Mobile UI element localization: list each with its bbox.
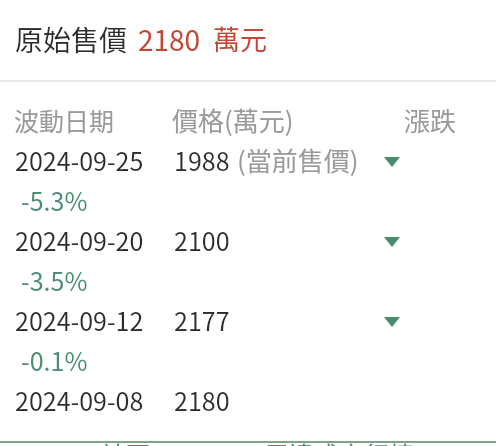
staticText: 2024-09-25 (15, 142, 144, 178)
other: Price decreased (384, 317, 400, 327)
button[interactable]: 2024-09-08 (0, 380, 496, 420)
staticText: (當前售價) (237, 141, 359, 179)
staticText: -5.3% (21, 182, 88, 218)
staticText: 2180 (174, 382, 230, 418)
button[interactable]: 2024-09-12 (0, 300, 496, 340)
button[interactable]: 周邊成交行情 (264, 436, 415, 446)
staticText: 2100 (174, 222, 230, 258)
staticText: 2024-09-12 (15, 302, 144, 338)
staticText: 2177 (174, 302, 230, 338)
other: Price decreased (384, 237, 400, 247)
staticText: 原始售價 (15, 19, 128, 55)
staticText: -0.1% (21, 342, 88, 378)
button[interactable]: 2024-09-20 (0, 220, 496, 260)
staticText: 2180 (138, 19, 201, 55)
button[interactable]: 2024-09-25 (0, 140, 496, 180)
staticText: 周邊成交行情 (264, 436, 415, 446)
other: Price decreased (384, 157, 400, 167)
staticText: 社區 (101, 436, 152, 446)
staticText: -3.5% (21, 262, 88, 298)
button[interactable]: 社區 (101, 436, 152, 446)
staticText: 1988 (174, 142, 230, 178)
staticText: 波動日期 (14, 102, 115, 138)
staticText: 萬元 (213, 19, 267, 55)
staticText: 漲跌 (404, 101, 457, 139)
staticText: 2024-09-20 (15, 222, 144, 258)
staticText: 價格(萬元) (172, 101, 294, 139)
staticText: 2024-09-08 (15, 382, 144, 418)
